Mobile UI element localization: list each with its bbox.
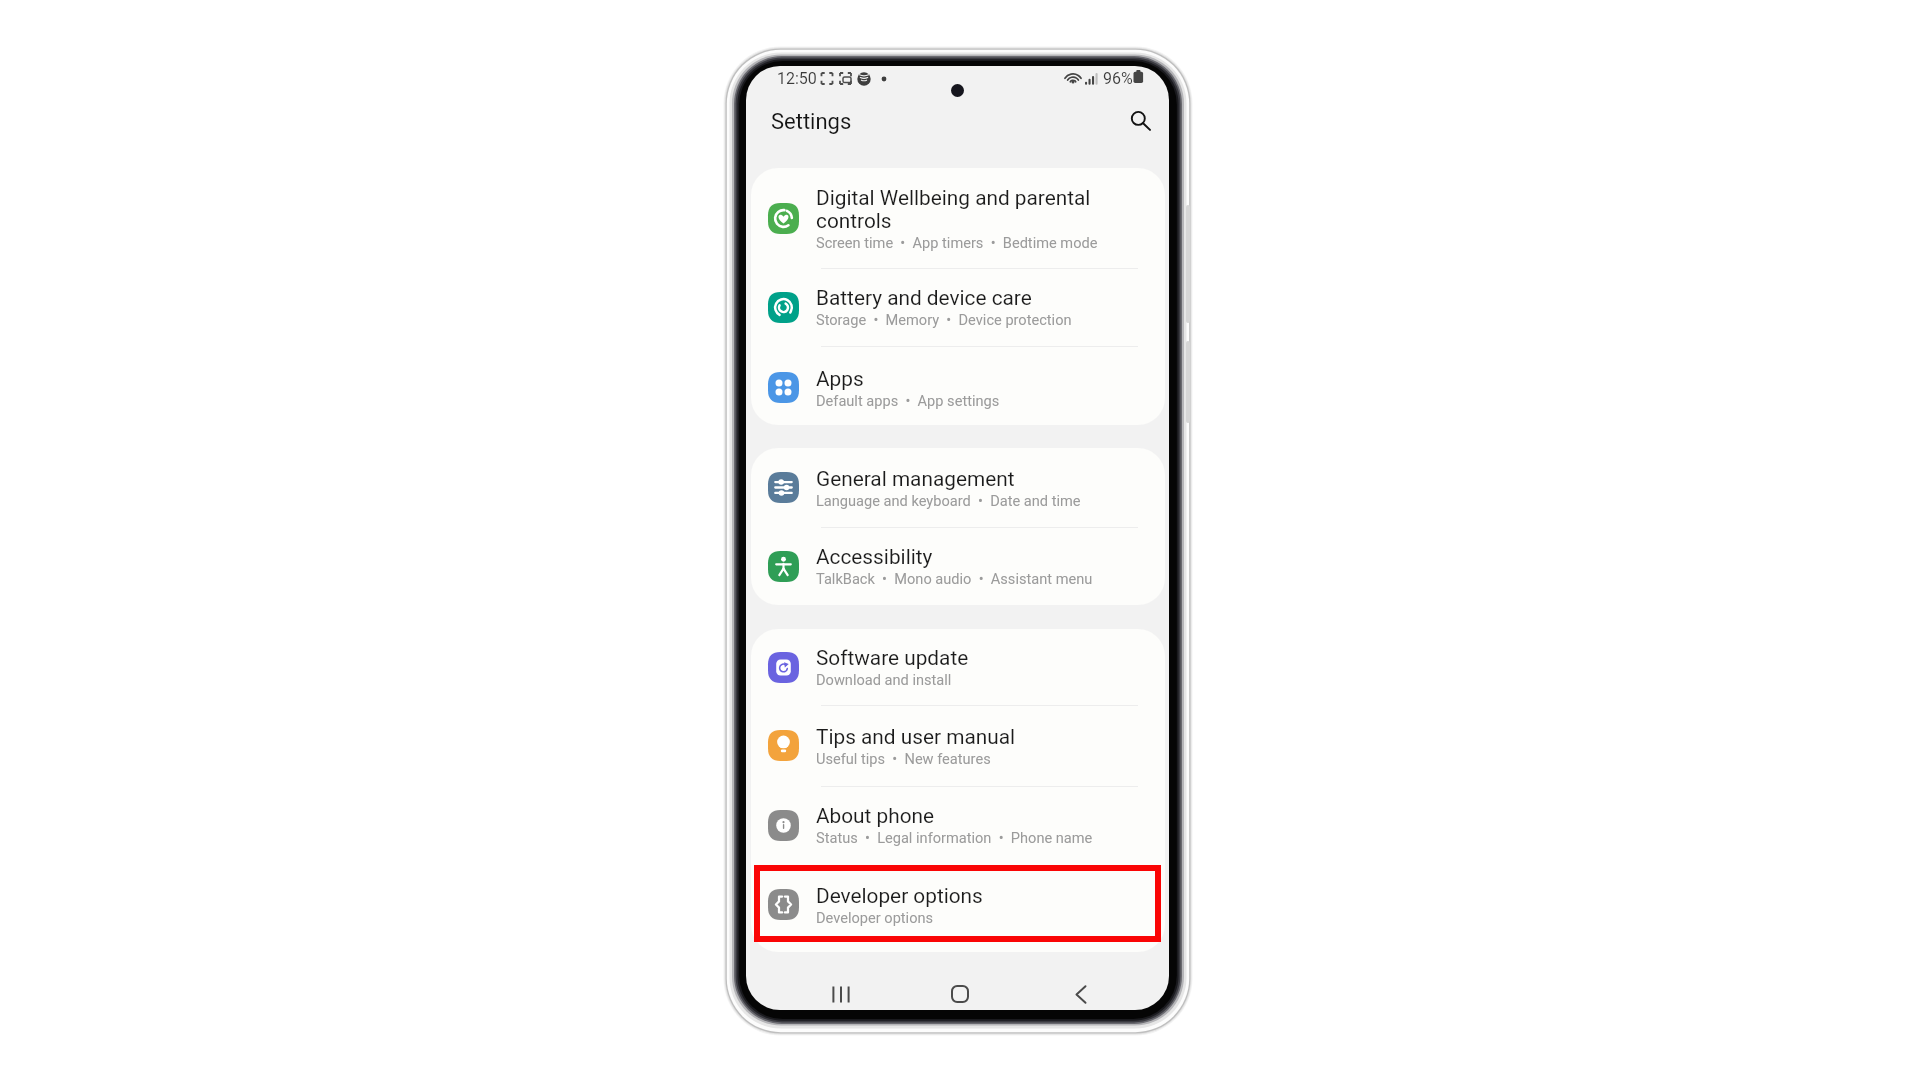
button[interactable]: Battery and device care: [751, 268, 1165, 346]
staticText: Developer options: [816, 909, 934, 926]
button[interactable]: General management: [751, 448, 1165, 527]
staticText: Language and keyboard • Date and time: [816, 492, 1081, 509]
staticText: General management: [816, 467, 1015, 491]
staticText: Storage • Memory • Device protection: [816, 311, 1072, 328]
button[interactable]: Back: [1057, 979, 1105, 1009]
staticText: Screen time • App timers • Bedtime mode: [816, 234, 1098, 251]
staticText: Default apps • App settings: [816, 392, 1000, 409]
staticText: Apps: [816, 367, 864, 391]
staticText: Status • Legal information • Phone name: [816, 829, 1093, 846]
staticText: Digital Wellbeing and parental controls: [816, 186, 1124, 233]
staticText: 96%: [1103, 69, 1133, 88]
staticText: About phone: [816, 804, 935, 828]
staticText: 12:50: [777, 69, 817, 88]
staticText: Developer options: [816, 884, 983, 908]
button[interactable]: Recents: [817, 979, 865, 1009]
button[interactable]: Home: [936, 979, 984, 1009]
staticText: Battery and device care: [816, 286, 1032, 310]
button[interactable]: About phone: [751, 786, 1165, 864]
button[interactable]: Digital Wellbeing and parental controls: [751, 168, 1165, 268]
button[interactable]: Search: [1118, 100, 1162, 144]
staticText: Useful tips • New features: [816, 750, 991, 767]
staticText: Tips and user manual: [816, 725, 1016, 749]
staticText: Accessibility: [816, 545, 933, 569]
button[interactable]: Software update: [751, 629, 1165, 705]
staticText: Download and install: [816, 671, 952, 688]
button[interactable]: Accessibility: [751, 527, 1165, 605]
button[interactable]: Apps: [751, 346, 1165, 425]
staticText: Software update: [816, 646, 969, 670]
button[interactable]: Developer options: [751, 864, 1165, 945]
button[interactable]: Tips and user manual: [751, 705, 1165, 786]
staticText: TalkBack • Mono audio • Assistant menu: [816, 570, 1093, 587]
staticText: Settings: [771, 109, 852, 135]
